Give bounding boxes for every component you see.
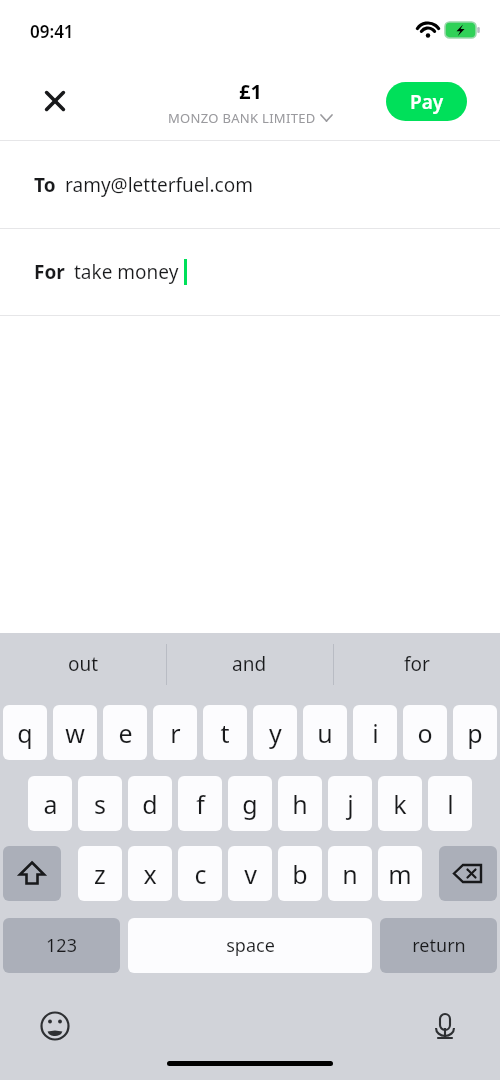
button[interactable]: r [153,705,197,760]
staticText: g [242,787,258,821]
button[interactable]: To [0,141,500,228]
button[interactable]: i [353,705,397,760]
button[interactable]: for [333,633,500,695]
staticText: w [65,716,85,750]
staticText: h [292,787,308,821]
staticText: b [292,857,308,891]
button[interactable]: t [203,705,247,760]
staticText: e [118,716,133,750]
staticText: l [447,787,454,821]
staticText: i [372,716,379,750]
staticText: return [412,933,466,958]
button[interactable]: j [328,776,372,831]
button[interactable]: 123 [3,918,120,973]
staticText: 09:41 [30,20,74,43]
button[interactable]: return [380,918,497,973]
staticText: m [388,857,412,891]
staticText: p [467,716,483,750]
staticText: c [194,857,207,891]
button[interactable]: h [278,776,322,831]
button[interactable]: g [228,776,272,831]
button[interactable]: k [378,776,422,831]
button[interactable]: Close [33,79,77,123]
staticText: d [142,787,158,821]
button[interactable]: o [403,705,447,760]
staticText: q [17,716,33,750]
staticText: o [417,716,433,750]
staticText: k [393,787,407,821]
staticText: out [68,651,99,677]
staticText: y [269,716,282,750]
staticText: £1 [239,78,262,105]
button[interactable]: £1 [0,78,500,127]
staticText: v [244,857,257,891]
button[interactable]: Dictation [423,1004,467,1048]
button[interactable]: s [78,776,122,831]
button[interactable]: q [3,705,47,760]
staticText: To [34,172,56,198]
button[interactable]: c [178,846,222,901]
staticText: z [94,857,106,891]
button[interactable]: b [278,846,322,901]
staticText: For [34,259,65,285]
button[interactable]: p [453,705,497,760]
staticText: a [43,787,58,821]
button[interactable]: and [166,633,333,695]
button[interactable]: l [428,776,472,831]
button[interactable]: out [0,633,166,695]
staticText: take money [74,259,179,285]
staticText: Pay [410,89,444,115]
button[interactable]: Backspace [439,846,497,901]
button[interactable]: Emoji [33,1004,77,1048]
staticText: for [404,651,430,677]
staticText: x [143,857,157,891]
staticText: f [196,787,205,821]
staticText: 123 [46,933,77,958]
button[interactable]: n [328,846,372,901]
button[interactable]: x [128,846,172,901]
staticText: s [94,787,106,821]
button[interactable]: f [178,776,222,831]
staticText: and [232,651,267,677]
button[interactable]: space [128,918,372,973]
button[interactable]: u [303,705,347,760]
button[interactable]: e [103,705,147,760]
button[interactable]: a [28,776,72,831]
button[interactable]: For [0,229,500,315]
button[interactable]: w [53,705,97,760]
staticText: MONZO BANK LIMITED [168,109,316,127]
button[interactable]: z [78,846,122,901]
staticText: r [170,716,181,750]
button[interactable]: Pay [386,82,467,121]
button[interactable]: y [253,705,297,760]
button[interactable]: d [128,776,172,831]
staticText: t [220,716,230,750]
staticText: j [347,787,354,821]
staticText: n [342,857,358,891]
button[interactable]: m [378,846,422,901]
staticText: u [317,716,333,750]
staticText: space [226,933,275,958]
staticText: ramy@letterfuel.com [65,172,253,198]
button[interactable]: Shift [3,846,61,901]
button[interactable]: v [228,846,272,901]
